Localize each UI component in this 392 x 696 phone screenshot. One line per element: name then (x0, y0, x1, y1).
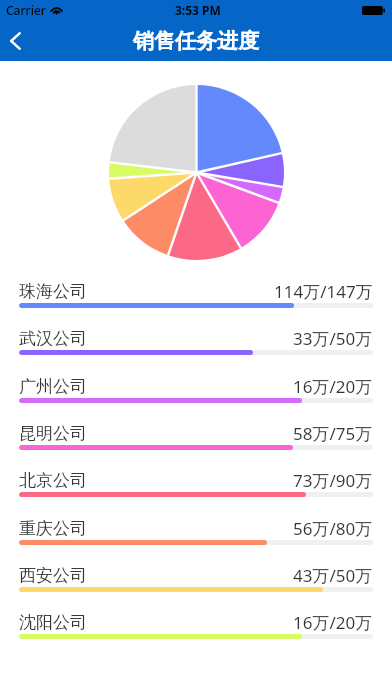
staticText: 33万/50万 (293, 327, 373, 350)
staticText: 重庆公司 (19, 518, 87, 539)
staticText: 西安公司 (19, 565, 87, 586)
staticText: 56万/80万 (293, 517, 373, 540)
button[interactable]: 武汉公司 (0, 323, 392, 370)
button[interactable]: 珠海公司 (0, 276, 392, 323)
staticText: Carrier (6, 2, 46, 18)
staticText: 16万/20万 (293, 375, 373, 398)
staticText: 43万/50万 (293, 564, 373, 587)
staticText: 3:53 PM (175, 2, 221, 18)
button[interactable]: 沈阳公司 (0, 607, 392, 654)
button[interactable]: 西安公司 (0, 560, 392, 607)
staticText: 北京公司 (19, 470, 87, 491)
staticText: 沈阳公司 (19, 612, 87, 633)
button[interactable]: 昆明公司 (0, 418, 392, 465)
staticText: 销售任务进度 (133, 28, 259, 54)
button[interactable]: 重庆公司 (0, 513, 392, 560)
button[interactable]: Back (0, 20, 36, 61)
staticText: 武汉公司 (19, 328, 87, 349)
staticText: 广州公司 (19, 376, 87, 397)
staticText: 114万/147万 (274, 280, 373, 303)
staticText: 昆明公司 (19, 423, 87, 444)
button[interactable]: 广州公司 (0, 371, 392, 418)
staticText: 珠海公司 (19, 281, 87, 302)
staticText: 58万/75万 (293, 422, 373, 445)
button[interactable]: 北京公司 (0, 465, 392, 512)
staticText: 16万/20万 (293, 611, 373, 634)
staticText: 73万/90万 (293, 469, 373, 492)
